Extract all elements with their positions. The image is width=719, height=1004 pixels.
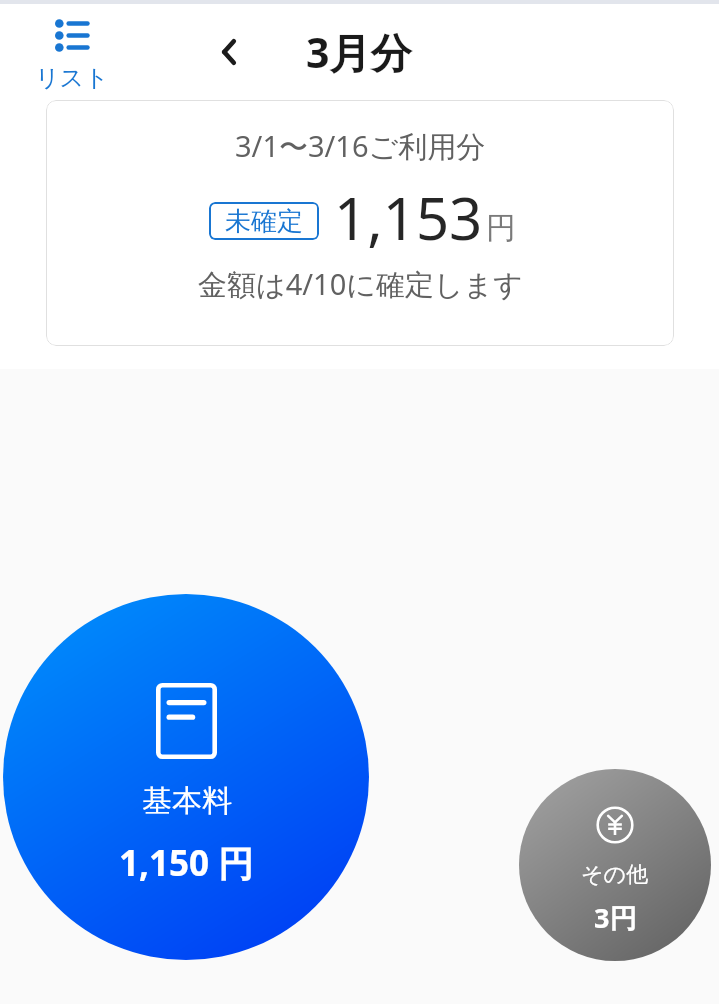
staticText: リスト bbox=[35, 63, 109, 93]
staticText: 3/1〜3/16ご利用分 bbox=[235, 126, 486, 166]
button[interactable]: リスト bbox=[27, 14, 117, 93]
staticText: 3円 bbox=[594, 899, 637, 936]
staticText: 1,153 bbox=[334, 178, 483, 257]
staticText: その他 bbox=[581, 861, 649, 889]
staticText: 未確定 bbox=[225, 205, 303, 238]
staticText: 基本料 bbox=[142, 782, 232, 820]
button[interactable]: その他 bbox=[519, 769, 711, 961]
button[interactable]: 基本料 bbox=[3, 594, 369, 960]
staticText: 1,150 円 bbox=[119, 839, 254, 887]
button[interactable]: 3/1〜3/16ご利用分 bbox=[46, 100, 674, 346]
button[interactable]: Back bbox=[205, 28, 253, 76]
staticText: 円 bbox=[486, 209, 516, 247]
staticText: 3月分 bbox=[306, 24, 412, 80]
staticText: 金額は4/10に確定します bbox=[198, 264, 523, 304]
